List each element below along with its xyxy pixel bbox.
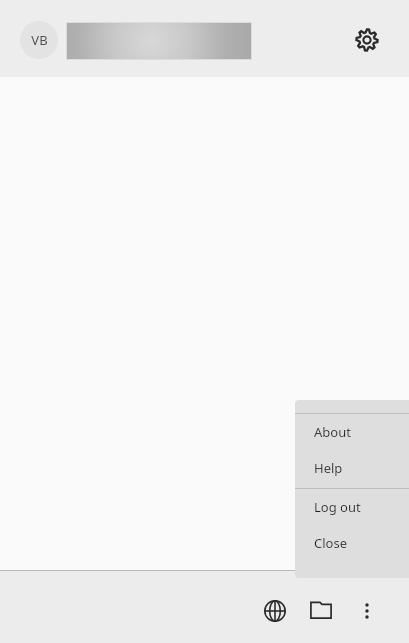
button[interactable] [67,23,251,59]
staticText: VB [31,31,48,49]
button[interactable]: Browse web [252,588,298,634]
button[interactable]: More options [344,588,390,634]
button[interactable]: About [295,414,409,450]
staticText: Close [314,534,347,552]
button[interactable]: Settings [350,23,384,57]
button[interactable]: Log out [295,489,409,525]
staticText: About [314,423,351,441]
button[interactable]: Files [298,588,344,634]
button[interactable]: Close [295,525,409,561]
staticText: Log out [314,498,361,516]
button[interactable]: VB [20,21,58,59]
button[interactable]: Help [295,450,409,486]
staticText: Help [314,459,343,477]
